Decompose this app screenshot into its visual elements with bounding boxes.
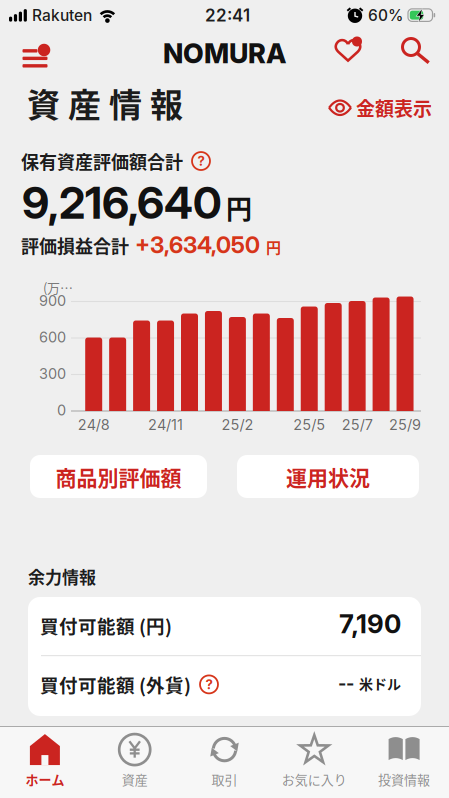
button[interactable]: Search <box>396 33 436 69</box>
staticText: 0 <box>57 401 66 419</box>
staticText: 円 <box>266 236 281 258</box>
button[interactable]: 金額表示 <box>328 94 432 121</box>
staticText: 産 <box>68 79 101 127</box>
button[interactable]: ヘルプ <box>191 151 211 171</box>
staticText: Rakuten <box>32 6 92 25</box>
button[interactable]: お気に入り <box>269 728 359 794</box>
staticText: 資 <box>27 79 60 127</box>
staticText: 円 <box>226 188 252 226</box>
staticText: ? <box>197 153 204 169</box>
staticText: 報 <box>150 79 183 127</box>
staticText: 投資情報 <box>378 770 430 788</box>
staticText: 保有資産評価額合計 <box>21 148 183 174</box>
button[interactable]: Menu <box>13 32 57 68</box>
button[interactable]: 投資情報 <box>359 728 449 794</box>
staticText: 評価損益合計 <box>21 232 129 258</box>
staticText: 運用状況 <box>286 461 370 492</box>
staticText: 商品別評価額 <box>55 461 181 492</box>
staticText: お気に入り <box>282 770 347 788</box>
staticText: 25/5 <box>293 416 325 433</box>
staticText: -- <box>338 672 354 694</box>
staticText: (万… <box>43 278 73 297</box>
staticText: 買付可能額 (外貨) <box>40 671 191 698</box>
button[interactable]: ホーム <box>0 728 90 794</box>
staticText: 60% <box>368 6 403 25</box>
staticText: ? <box>205 676 212 692</box>
staticText: 余力情報 <box>28 564 96 589</box>
button[interactable]: 資産 <box>90 728 180 794</box>
staticText: ホーム <box>25 770 64 788</box>
staticText: +3,634,050 <box>135 231 260 259</box>
staticText: 買付可能額 (円) <box>40 612 172 639</box>
staticText: 取引 <box>211 770 237 788</box>
button[interactable]: 取引 <box>180 728 269 794</box>
staticText: 25/7 <box>342 416 373 433</box>
button[interactable]: ヘルプ <box>199 674 219 694</box>
staticText: 300 <box>39 365 66 382</box>
staticText: 24/11 <box>148 416 183 433</box>
staticText: 25/9 <box>389 416 421 433</box>
staticText: 600 <box>39 328 66 346</box>
button[interactable]: 運用状況 <box>237 455 419 498</box>
button[interactable]: Favorites <box>329 32 369 68</box>
staticText: 資産 <box>122 770 148 788</box>
staticText: 22:41 <box>205 5 250 26</box>
staticText: 24/8 <box>78 416 110 433</box>
staticText: 900 <box>39 292 66 309</box>
staticText: NOMURA <box>163 37 286 70</box>
staticText: 9,216,640 <box>22 176 222 229</box>
staticText: 情 <box>109 79 142 127</box>
staticText: 金額表示 <box>356 94 432 121</box>
staticText: 25/2 <box>221 416 253 433</box>
staticText: 7,190 <box>339 608 401 639</box>
staticText: 米ドル <box>359 673 401 693</box>
button[interactable]: 商品別評価額 <box>30 455 207 498</box>
